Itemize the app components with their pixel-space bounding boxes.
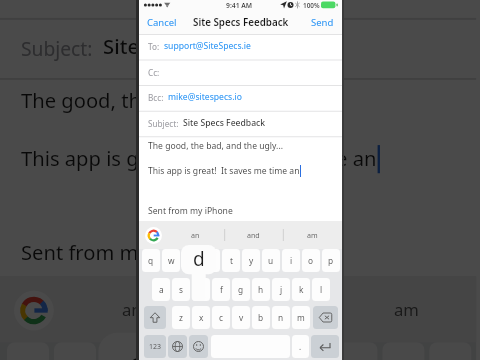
button[interactable]: am (338, 276, 476, 342)
button[interactable]: h (252, 278, 270, 301)
button[interactable]: an (166, 221, 224, 249)
staticText: t (213, 356, 220, 360)
staticText: mike@sitespecs.io (168, 91, 242, 103)
button[interactable]: m (292, 306, 310, 329)
button[interactable]: q (142, 249, 160, 272)
staticText: r (164, 356, 173, 360)
button[interactable]: i (282, 249, 300, 272)
button[interactable]: Change keyboard (168, 335, 187, 358)
button[interactable]: k (292, 278, 310, 301)
button[interactable]: z (172, 306, 190, 329)
button[interactable]: Cancel (139, 12, 185, 33)
button[interactable]: y (242, 249, 260, 272)
button[interactable]: g (232, 278, 250, 301)
button[interactable]: Bcc: (139, 85, 342, 111)
button[interactable]: v (232, 306, 250, 329)
button[interactable]: u (288, 342, 331, 360)
staticText: am (307, 230, 318, 240)
staticText: This app is great! It saves me time an (21, 145, 378, 173)
button[interactable]: i (335, 342, 378, 360)
staticText: Subject: (21, 35, 94, 61)
staticText: This app is great! It saves me time an (148, 165, 300, 177)
staticText: The good, the bad, and the ugly... (148, 140, 284, 152)
staticText: d (193, 246, 205, 272)
staticText: y (258, 356, 270, 360)
button[interactable]: n (272, 306, 290, 329)
staticText: Sent from my iPhone (21, 239, 220, 267)
button[interactable]: t (195, 342, 237, 360)
staticText: d (127, 335, 155, 360)
staticText: n (278, 312, 284, 323)
button[interactable]: p (322, 249, 340, 272)
staticText: a (159, 284, 164, 295)
staticText: . (299, 341, 302, 352)
button[interactable]: r (148, 342, 190, 360)
button[interactable]: x (192, 306, 210, 329)
staticText: To: (148, 41, 160, 52)
staticText: k (299, 284, 304, 295)
button[interactable]: b (252, 306, 270, 329)
staticText: b (258, 312, 264, 323)
button[interactable]: and (199, 276, 338, 342)
button[interactable]: o (302, 249, 320, 272)
button[interactable]: Subject: (0, 18, 476, 79)
button[interactable]: Send (303, 12, 342, 33)
staticText: and (247, 230, 260, 240)
button[interactable]: y (241, 342, 284, 360)
staticText: 100% (303, 1, 320, 10)
staticText: j (280, 284, 283, 295)
button[interactable]: t (222, 249, 240, 272)
staticText: Cc: (148, 67, 160, 78)
button[interactable]: Shift (144, 306, 166, 329)
button[interactable]: Bcc: (0, 0, 476, 18)
staticText: 9:41 AM (226, 1, 253, 10)
button[interactable]: j (272, 278, 290, 301)
staticText: The good, the bad, and the ugly... (21, 86, 340, 115)
staticText: c (219, 312, 223, 323)
button[interactable]: f (212, 278, 230, 301)
button[interactable]: To: (139, 34, 342, 60)
button[interactable]: Enter (311, 335, 339, 358)
button[interactable]: Subject: (139, 111, 342, 137)
staticText: p (328, 255, 334, 266)
staticText: an (191, 230, 200, 240)
staticText: q (148, 255, 154, 266)
button[interactable]: e (101, 342, 143, 360)
button[interactable]: w (162, 249, 180, 272)
button[interactable]: u (262, 249, 280, 272)
button[interactable]: r (202, 249, 220, 272)
button[interactable]: e (182, 249, 200, 272)
button[interactable]: . (292, 335, 309, 358)
button[interactable]: s (172, 278, 190, 301)
button[interactable]: and (224, 221, 283, 249)
button[interactable]: a (152, 278, 170, 301)
button[interactable]: Cc: (139, 60, 342, 86)
button[interactable]: Emoji (189, 335, 208, 358)
button[interactable]: am (283, 221, 342, 249)
button[interactable]: 123 (144, 335, 166, 358)
button[interactable]: Backspace (313, 306, 338, 329)
staticText: Send (311, 16, 334, 29)
staticText: and (253, 298, 284, 321)
staticText: Subject: (148, 118, 179, 129)
button[interactable]: c (212, 306, 230, 329)
staticText: l (320, 284, 323, 295)
button[interactable]: an (63, 276, 199, 342)
staticText: Site Specs Feedback (103, 32, 298, 61)
staticText: am (394, 298, 420, 321)
staticText: h (258, 284, 264, 295)
button[interactable]: l (312, 278, 330, 301)
